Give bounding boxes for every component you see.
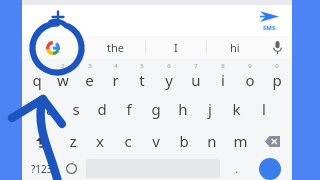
button[interactable]: Google search <box>22 36 84 59</box>
button[interactable]: z <box>59 125 86 157</box>
button[interactable]: l <box>250 93 277 125</box>
button[interactable]: j <box>196 93 223 125</box>
staticText: 2 <box>61 62 65 70</box>
button[interactable]: 7 <box>182 59 209 93</box>
staticText: u <box>191 70 201 90</box>
staticText: v <box>152 131 160 151</box>
staticText: n <box>207 131 217 151</box>
button[interactable]: the <box>85 36 145 59</box>
staticText: r <box>112 70 119 90</box>
button[interactable]: Period <box>223 157 250 180</box>
button[interactable]: 5 <box>128 59 155 93</box>
staticText: l <box>262 99 266 119</box>
staticText: c <box>124 131 132 151</box>
button[interactable]: Enter <box>250 157 289 180</box>
button[interactable]: 4 <box>102 59 128 93</box>
staticText: h <box>178 99 188 119</box>
staticText: k <box>232 99 241 119</box>
staticText: 8 <box>221 62 225 70</box>
staticText: I <box>174 40 178 55</box>
button[interactable]: a <box>37 93 63 125</box>
staticText: m <box>233 131 248 151</box>
staticText: y <box>165 70 173 90</box>
staticText: . <box>235 161 238 176</box>
staticText: g <box>151 99 161 119</box>
button[interactable]: 2 <box>50 59 76 93</box>
button[interactable]: Emoji <box>59 157 83 180</box>
staticText: ?123 <box>31 162 53 176</box>
button[interactable]: d <box>89 93 115 125</box>
staticText: 0 <box>275 62 279 70</box>
button[interactable]: Backspace <box>254 125 290 157</box>
button[interactable]: Send SMS <box>252 6 286 36</box>
staticText: x <box>96 131 104 151</box>
staticText: d <box>97 99 107 119</box>
staticText: z <box>69 131 77 151</box>
button[interactable]: 1 <box>24 59 50 93</box>
button[interactable]: 9 <box>236 59 263 93</box>
button[interactable]: 3 <box>76 59 102 93</box>
button[interactable]: k <box>223 93 250 125</box>
button[interactable]: I <box>146 36 206 59</box>
button[interactable]: v <box>142 125 170 157</box>
button[interactable]: 6 <box>155 59 182 93</box>
button[interactable]: Symbols <box>25 157 59 180</box>
button[interactable]: b <box>170 125 198 157</box>
staticText: e <box>85 70 94 90</box>
staticText: t <box>139 70 145 90</box>
button[interactable]: c <box>114 125 142 157</box>
button[interactable]: g <box>142 93 169 125</box>
staticText: f <box>126 99 132 119</box>
staticText: 5 <box>140 62 144 70</box>
button[interactable]: Shift <box>24 125 59 157</box>
staticText: q <box>32 70 42 90</box>
button[interactable]: h <box>169 93 196 125</box>
staticText: j <box>208 99 212 119</box>
button[interactable]: n <box>198 125 226 157</box>
staticText: 7 <box>194 62 198 70</box>
staticText: 6 <box>167 62 171 70</box>
button[interactable]: hi <box>207 36 262 59</box>
staticText: the <box>107 40 124 55</box>
staticText: o <box>245 70 255 90</box>
staticText: 9 <box>248 62 252 70</box>
button[interactable]: f <box>115 93 142 125</box>
button[interactable]: s <box>63 93 89 125</box>
staticText: 3 <box>88 62 92 70</box>
staticText: b <box>179 131 189 151</box>
staticText: s <box>72 99 80 119</box>
staticText: a <box>46 99 55 119</box>
staticText: 4 <box>114 62 118 70</box>
button[interactable]: m <box>226 125 254 157</box>
button[interactable]: 8 <box>209 59 236 93</box>
button[interactable]: x <box>86 125 114 157</box>
button[interactable]: 0 <box>263 59 290 93</box>
staticText: i <box>221 70 225 90</box>
staticText: hi <box>230 40 240 55</box>
staticText: SMS <box>263 24 276 32</box>
staticText: w <box>57 70 69 90</box>
staticText: 1 <box>35 62 39 70</box>
button[interactable]: Voice input <box>262 36 292 59</box>
staticText: p <box>272 70 282 90</box>
